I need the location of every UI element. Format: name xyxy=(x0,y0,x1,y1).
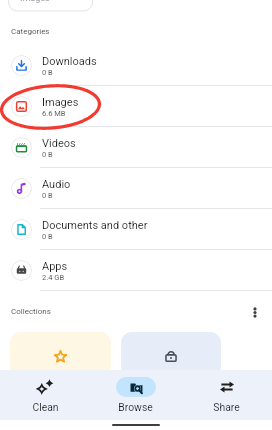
button[interactable]: Audio xyxy=(0,168,272,209)
staticText: Browse xyxy=(118,401,153,413)
button[interactable]: Documents and other xyxy=(0,209,272,250)
button[interactable]: Downloads xyxy=(0,45,272,86)
staticText: Downloads xyxy=(42,55,97,68)
staticText: 0 B xyxy=(42,150,53,159)
staticText: Audio xyxy=(42,178,71,191)
staticText: 0 B xyxy=(42,191,53,200)
button[interactable]: Browse xyxy=(90,370,181,420)
button[interactable]: Clean xyxy=(0,370,90,420)
button[interactable]: More options xyxy=(245,302,265,322)
staticText: Documents and other xyxy=(42,219,148,232)
staticText: Videos xyxy=(42,137,76,150)
staticText: Collections xyxy=(11,307,51,316)
staticText: Clean xyxy=(32,401,59,413)
button[interactable] xyxy=(121,332,221,377)
staticText: 0 B xyxy=(42,232,53,241)
staticText: Images xyxy=(42,96,79,109)
button[interactable]: Apps xyxy=(0,250,272,291)
staticText: 2.4 GB xyxy=(42,273,65,282)
staticText: Categories xyxy=(11,27,50,36)
button[interactable] xyxy=(10,332,111,377)
staticText: Images xyxy=(20,0,50,4)
button[interactable]: Videos xyxy=(0,127,272,168)
staticText: Apps xyxy=(42,260,68,273)
button[interactable]: Images xyxy=(0,86,272,127)
staticText: 0 B xyxy=(42,68,53,77)
staticText: Share xyxy=(213,401,240,413)
button[interactable]: Share xyxy=(181,370,272,420)
staticText: 6.6 MB xyxy=(42,109,66,118)
